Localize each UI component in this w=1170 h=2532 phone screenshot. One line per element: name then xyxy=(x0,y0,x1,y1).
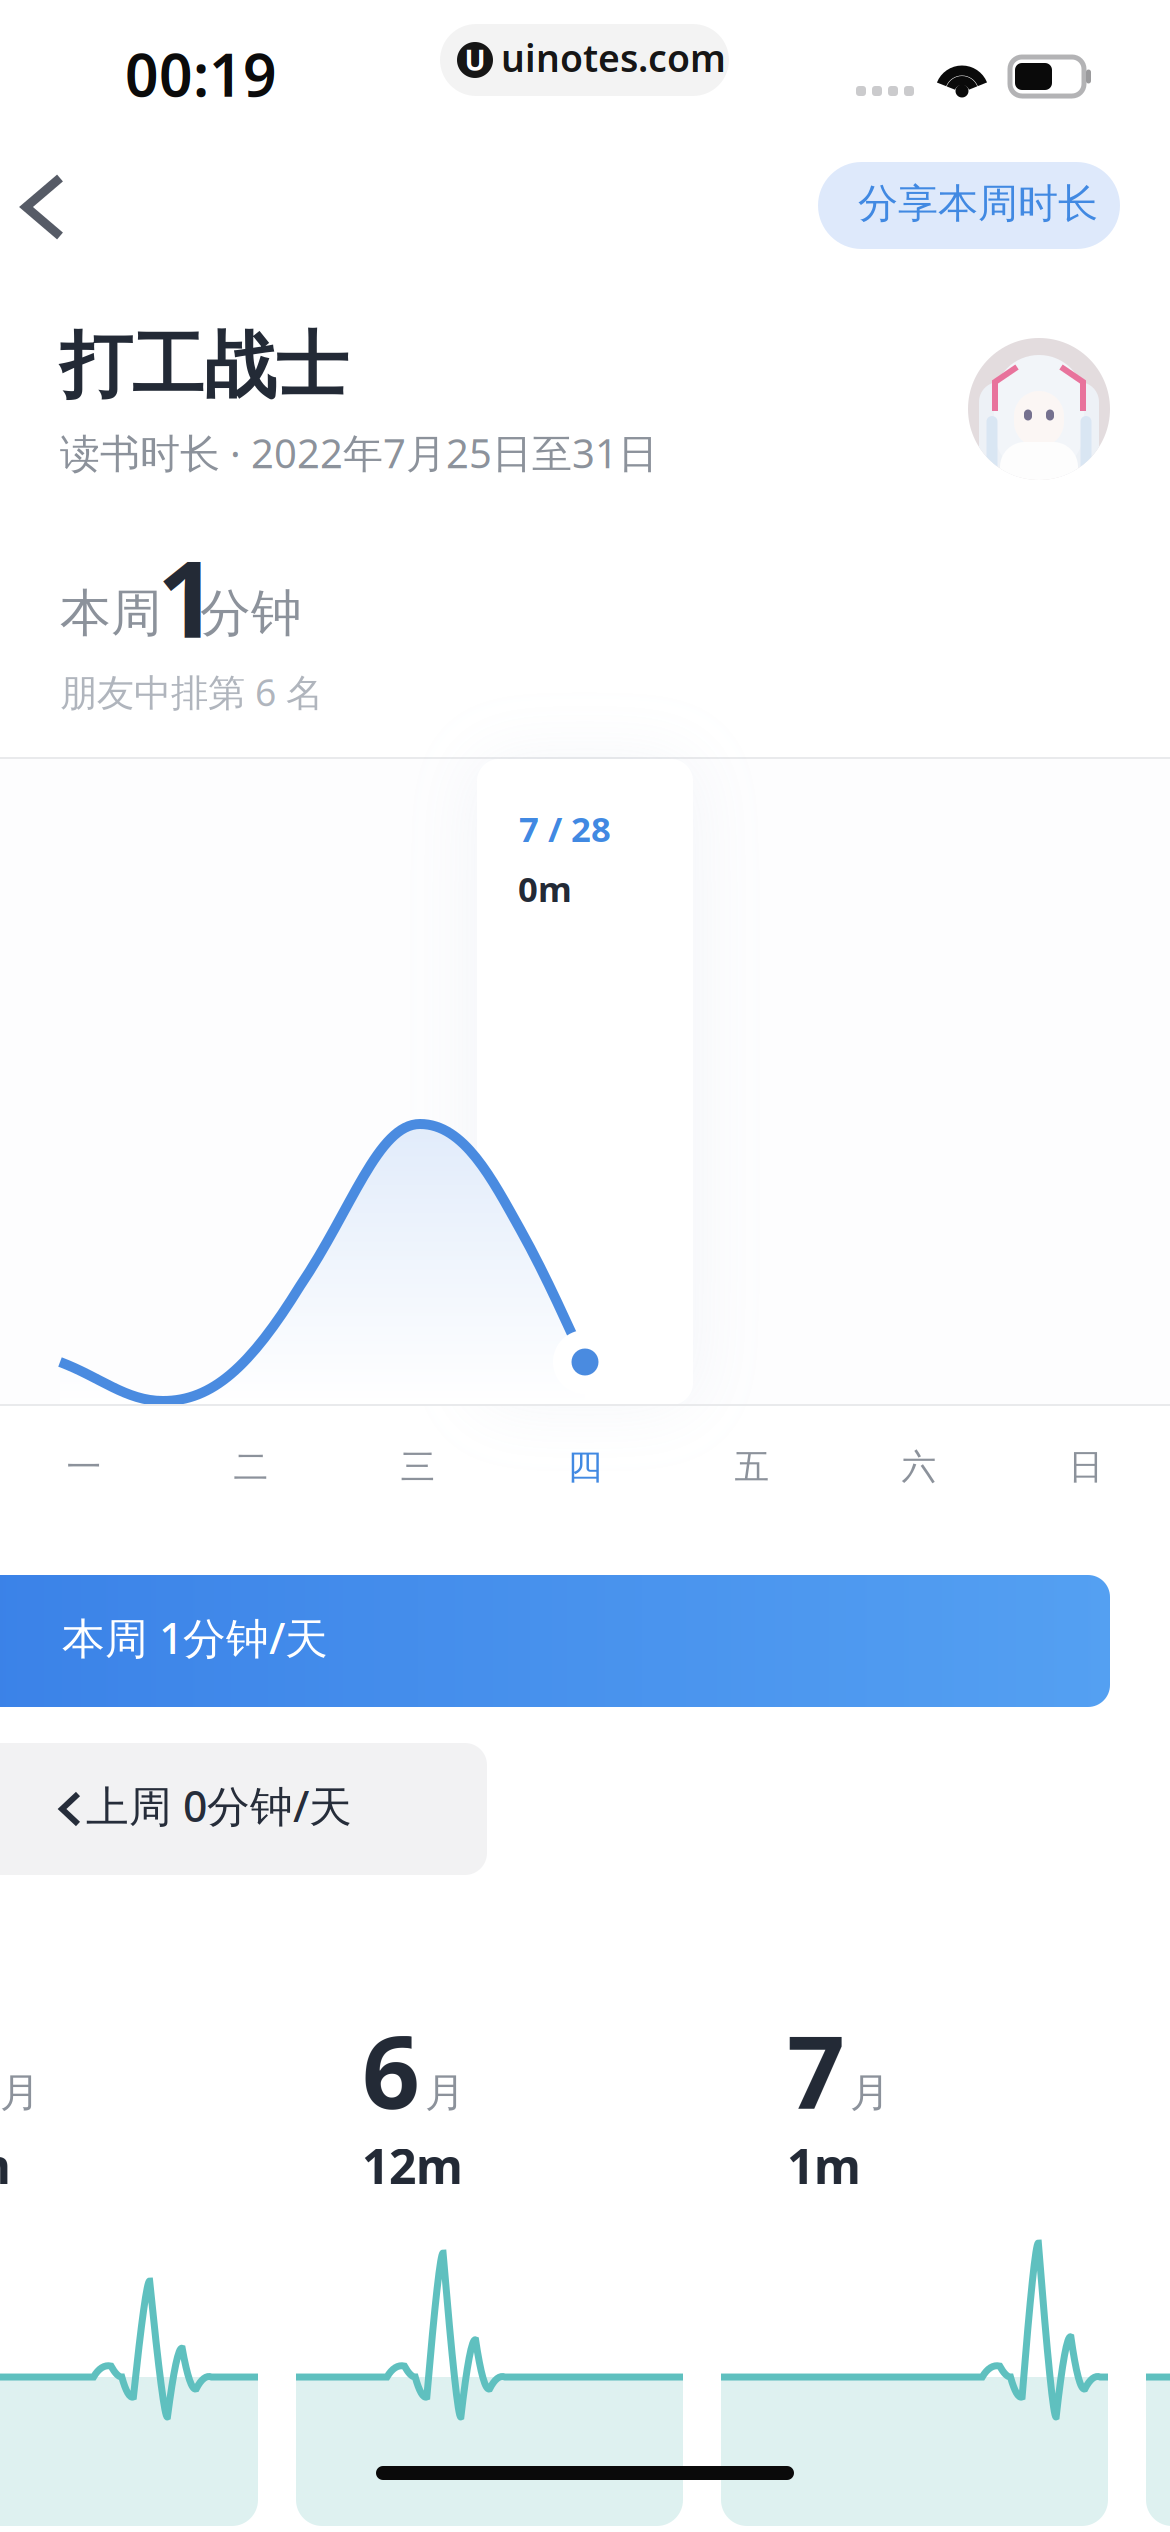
button[interactable]: 六 xyxy=(835,1415,1002,1511)
button[interactable]: 四 xyxy=(501,1415,668,1511)
staticText: 二 xyxy=(233,1446,268,1488)
button[interactable]: 三 xyxy=(334,1415,501,1511)
button[interactable]: 上周 0分钟/天 xyxy=(0,1743,487,1875)
button[interactable]: 分享本周时长 xyxy=(818,162,1120,249)
staticText: 月 xyxy=(850,2068,890,2117)
button[interactable]: 五 xyxy=(668,1415,835,1511)
staticText: 6 xyxy=(362,2002,420,2137)
button[interactable]: 7 xyxy=(721,1971,1108,2526)
staticText: 一 xyxy=(66,1446,101,1488)
staticText: 五 xyxy=(734,1446,769,1488)
staticText: uinotes.com xyxy=(501,33,726,82)
staticText: 本周 1分钟/天 xyxy=(62,1609,328,1666)
staticText: 12m xyxy=(362,2133,463,2197)
staticText: 7 / 28 xyxy=(519,805,611,851)
staticText: 7 xyxy=(787,2002,845,2137)
staticText: 分钟 xyxy=(200,582,302,644)
staticText: 读书时长 · 2022年7月25日至31日 xyxy=(60,426,658,479)
staticText: 月 xyxy=(425,2068,465,2117)
staticText: 分享本周时长 xyxy=(858,179,1098,228)
staticText: 本周 xyxy=(60,582,162,644)
staticText: 0m xyxy=(518,865,572,911)
staticText: 六 xyxy=(901,1446,936,1488)
staticText: 00:19 xyxy=(125,35,277,113)
staticText: 三 xyxy=(400,1446,435,1488)
button[interactable]: 一 xyxy=(0,1415,167,1511)
staticText: 打工战士 xyxy=(60,322,348,410)
staticText: 月 xyxy=(0,2068,40,2117)
staticText: 1 xyxy=(157,527,217,667)
staticText: U xyxy=(464,41,485,79)
button[interactable]: Back xyxy=(0,150,88,264)
staticText: 四 xyxy=(567,1446,602,1488)
button[interactable]: 二 xyxy=(167,1415,334,1511)
staticText: 朋友中排第 6 名 xyxy=(60,667,323,717)
staticText: 0m xyxy=(0,2133,11,2197)
button[interactable]: 日 xyxy=(1002,1415,1169,1511)
button[interactable]: 5 xyxy=(0,1971,258,2526)
button[interactable]: 8 xyxy=(1146,1971,1170,2526)
staticText: 上周 0分钟/天 xyxy=(86,1777,352,1834)
staticText: 日 xyxy=(1068,1446,1103,1488)
button[interactable]: 本周 1分钟/天 xyxy=(0,1575,1110,1707)
staticText: 1m xyxy=(787,2133,861,2197)
button[interactable]: 6 xyxy=(296,1971,683,2526)
